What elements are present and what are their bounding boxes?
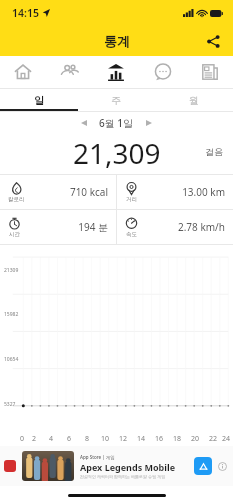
staticText: 전설적인 캐릭터와 함께하는 배틀로얄 슈팅 게임: [80, 474, 166, 479]
button[interactable]: 거리: [117, 175, 233, 209]
button[interactable]: Next day: [140, 114, 158, 132]
staticText: 칼로리: [8, 196, 25, 203]
staticText: 4: [49, 434, 54, 444]
staticText: 21,309: [73, 134, 161, 168]
staticText: 8: [85, 434, 90, 444]
staticText: 6: [67, 434, 72, 444]
staticText: 2.78 km/h: [138, 220, 225, 234]
button[interactable]: 속도: [117, 210, 233, 244]
staticText: 주: [111, 94, 121, 107]
staticText: 14: [137, 434, 146, 444]
button[interactable]: Previous day: [75, 114, 93, 132]
staticText: 속도: [126, 231, 137, 238]
staticText: 16: [155, 434, 164, 444]
button[interactable]: 시간: [0, 210, 116, 244]
button[interactable]: Share: [201, 29, 225, 53]
staticText: 걸음: [205, 146, 223, 157]
staticText: 21309: [4, 267, 19, 274]
staticText: 통계: [104, 33, 130, 49]
button[interactable]: Ad info: [215, 459, 229, 473]
staticText: 13.00 km: [138, 185, 225, 199]
button[interactable]: Chat: [139, 56, 186, 88]
button[interactable]: 일: [0, 89, 77, 111]
staticText: 일: [34, 94, 44, 107]
staticText: 22: [209, 434, 218, 444]
staticText: 710 kcal: [25, 185, 108, 199]
staticText: 2: [32, 434, 37, 444]
staticText: 0: [20, 434, 25, 444]
staticText: App Store | 게임: [80, 454, 115, 460]
button[interactable]: 주: [77, 89, 155, 111]
button[interactable]: 월: [155, 89, 233, 111]
staticText: 12: [119, 434, 128, 444]
staticText: 15982: [4, 311, 19, 318]
button[interactable]: Statistics: [92, 56, 139, 88]
staticText: 10: [101, 434, 110, 444]
button[interactable]: Open App Store: [194, 457, 212, 475]
button[interactable]: Home: [0, 56, 46, 88]
staticText: 18: [173, 434, 182, 444]
staticText: 24: [222, 434, 231, 444]
button[interactable]: 칼로리: [0, 175, 116, 209]
staticText: Apex Legends Mobile: [80, 461, 176, 473]
staticText: 거리: [126, 196, 137, 203]
staticText: 6월 1일: [99, 116, 134, 130]
staticText: 월: [189, 94, 199, 107]
staticText: 14:15: [12, 6, 39, 20]
button[interactable]: News: [186, 56, 233, 88]
button[interactable]: Friends: [46, 56, 92, 88]
staticText: 194 분: [21, 220, 108, 234]
staticText: 20: [191, 434, 200, 444]
staticText: 5327: [4, 401, 16, 408]
staticText: 시간: [9, 231, 20, 238]
staticText: 10654: [4, 356, 19, 363]
button[interactable]: App Store | 게임: [4, 446, 229, 486]
